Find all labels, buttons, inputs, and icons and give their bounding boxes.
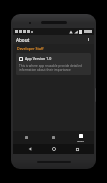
button[interactable]: App Version 1.0	[16, 53, 91, 75]
button[interactable]: More options	[85, 35, 91, 44]
button[interactable]: Home	[13, 131, 40, 144]
staticText: This is where app reusable provide detai…	[19, 64, 88, 72]
button[interactable]: About	[67, 131, 94, 144]
staticText: Developer Stuff	[17, 46, 44, 51]
staticText: About	[77, 139, 84, 142]
button[interactable]: Recents	[71, 144, 83, 154]
button[interactable]: Home	[48, 144, 60, 154]
button[interactable]: Items	[40, 131, 67, 144]
staticText: App Version 1.0	[25, 56, 52, 61]
staticText: About	[16, 37, 30, 43]
button[interactable]: Back	[24, 144, 36, 154]
